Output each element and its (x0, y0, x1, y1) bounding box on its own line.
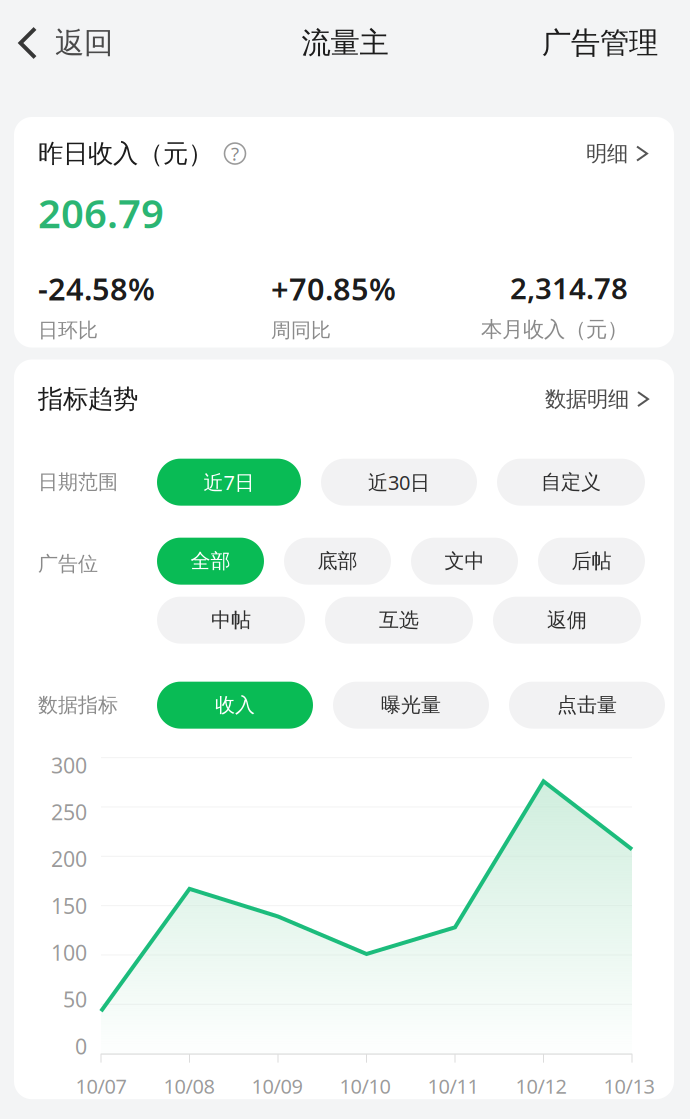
button[interactable]: 文中 (411, 538, 518, 585)
staticText: 10/13 (603, 1073, 654, 1099)
staticText: 文中 (444, 549, 484, 573)
staticText: 100 (51, 938, 87, 967)
staticText: 中帖 (211, 608, 251, 632)
staticText: 收入 (215, 693, 255, 717)
button[interactable]: 点击量 (509, 682, 665, 729)
button[interactable]: 近30日 (321, 459, 477, 506)
button[interactable]: 收入 (157, 682, 313, 729)
staticText: 底部 (317, 549, 357, 573)
staticText: 广告位 (38, 552, 98, 576)
button[interactable]: 数据明细 (545, 386, 649, 412)
staticText: -24.58% (38, 268, 155, 309)
staticText: 200 (51, 845, 87, 873)
button[interactable]: 全部 (157, 538, 264, 585)
staticText: 互选 (379, 608, 419, 632)
staticText: 指标趋势 (38, 383, 138, 415)
staticText: 2,314.78 (510, 268, 628, 307)
button[interactable]: 自定义 (497, 459, 645, 506)
button[interactable]: 广告管理 (526, 0, 690, 86)
staticText: 近30日 (368, 469, 430, 495)
staticText: 0 (75, 1032, 87, 1060)
staticText: 广告管理 (542, 25, 658, 61)
staticText: 昨日收入（元） (38, 138, 213, 169)
button[interactable]: 互选 (325, 597, 473, 644)
staticText: 数据明细 (545, 386, 629, 412)
button[interactable]: 曝光量 (333, 682, 489, 729)
button[interactable]: 后帖 (538, 538, 645, 585)
staticText: 全部 (190, 549, 230, 573)
staticText: 自定义 (541, 470, 601, 494)
staticText: 返佣 (547, 608, 587, 632)
button[interactable]: 近7日 (157, 459, 301, 506)
staticText: 50 (63, 985, 87, 1013)
staticText: 10/10 (339, 1073, 390, 1099)
staticText: ? (231, 141, 239, 166)
staticText: 206.79 (38, 186, 164, 239)
staticText: 曝光量 (381, 693, 441, 717)
staticText: 日期范围 (38, 470, 118, 494)
button[interactable]: 返回 (0, 0, 129, 86)
staticText: 明细 (586, 140, 628, 167)
staticText: 250 (51, 798, 87, 826)
staticText: 本月收入（元） (481, 316, 628, 342)
staticText: 近7日 (203, 469, 254, 495)
staticText: 返回 (55, 25, 113, 61)
staticText: +70.85% (271, 268, 396, 309)
staticText: 150 (51, 891, 87, 920)
staticText: 300 (51, 751, 87, 779)
staticText: 10/12 (515, 1073, 566, 1099)
staticText: 日环比 (38, 318, 98, 343)
button[interactable]: 返佣 (493, 597, 641, 644)
staticText: 周同比 (271, 318, 331, 343)
staticText: 10/08 (163, 1073, 214, 1099)
staticText: 流量主 (301, 25, 388, 61)
staticText: 点击量 (557, 693, 617, 717)
staticText: 10/11 (427, 1073, 478, 1099)
staticText: 10/09 (251, 1073, 302, 1099)
staticText: 10/07 (75, 1073, 126, 1099)
staticText: 后帖 (571, 549, 611, 573)
button[interactable]: 底部 (284, 538, 391, 585)
staticText: 数据指标 (38, 693, 118, 717)
button[interactable]: 明细 (586, 140, 628, 167)
button[interactable]: 中帖 (157, 597, 305, 644)
